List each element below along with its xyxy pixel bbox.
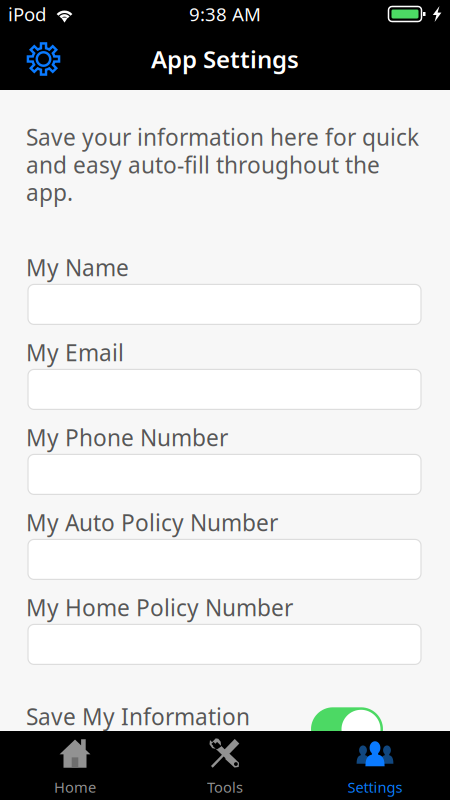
button[interactable]: Settings [0,28,87,90]
staticText: Save My Information [26,701,250,731]
staticText: My Home Policy Number [26,592,293,622]
button[interactable]: Tools [150,731,300,800]
staticText: Settings [347,777,402,797]
button[interactable]: My Auto Policy Number [26,539,421,579]
button[interactable]: My Name [26,284,421,324]
button[interactable]: Home [0,731,150,800]
staticText: My Email [26,337,124,367]
staticText: Home [54,777,96,797]
button[interactable]: My Phone Number [26,454,421,494]
staticText: Save your information here for quick and… [26,122,419,207]
button[interactable]: Save My Information [26,701,383,745]
button[interactable]: Settings [300,731,450,800]
staticText: My Auto Policy Number [26,507,278,537]
staticText: Tools [207,777,243,797]
staticText: My Phone Number [26,422,228,452]
staticText: 9:38 AM [189,2,261,26]
staticText: App Settings [151,43,299,75]
button[interactable]: My Home Policy Number [26,624,421,664]
staticText: My Name [26,252,129,282]
button[interactable]: My Email [26,369,421,409]
staticText: iPod [8,2,46,26]
